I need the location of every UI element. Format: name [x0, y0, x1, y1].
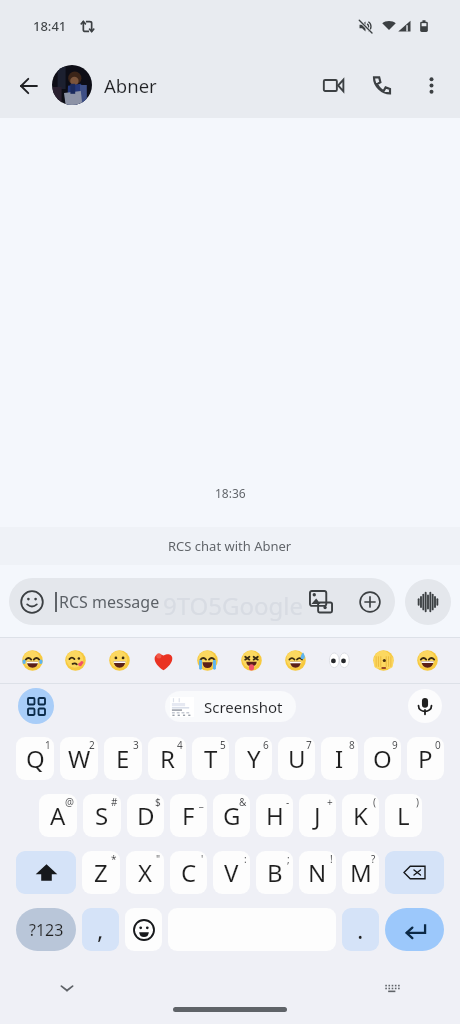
- button[interactable]: Y: [235, 737, 272, 780]
- button[interactable]: G: [213, 794, 250, 837]
- button[interactable]: backspace: [385, 851, 444, 894]
- staticText: ;: [287, 852, 290, 866]
- staticText: A: [50, 799, 66, 832]
- staticText: Q: [26, 742, 45, 775]
- staticText: *: [111, 852, 117, 866]
- button[interactable]: N: [299, 851, 336, 894]
- button[interactable]: Emoji: [141, 638, 185, 683]
- button[interactable]: Emoji: [185, 638, 229, 683]
- staticText: Y: [247, 742, 261, 775]
- button[interactable]: 9TO5Google: [9, 578, 395, 625]
- button[interactable]: Z: [82, 851, 120, 894]
- button[interactable]: A: [39, 794, 77, 837]
- button[interactable]: Apps: [18, 688, 54, 724]
- button[interactable]: Emoji: [229, 638, 273, 683]
- staticText: +: [327, 795, 333, 809]
- button[interactable]: M: [342, 851, 379, 894]
- button[interactable]: ,: [82, 908, 119, 951]
- button[interactable]: Emoji: [317, 638, 361, 683]
- staticText: 0: [435, 738, 441, 752]
- button[interactable]: Video call: [310, 62, 356, 108]
- button[interactable]: Emoji: [54, 638, 97, 683]
- staticText: ?: [371, 852, 376, 866]
- button[interactable]: U: [278, 737, 315, 780]
- button[interactable]: W: [60, 737, 98, 780]
- button[interactable]: emoji: [125, 908, 162, 951]
- button[interactable]: L: [385, 794, 422, 837]
- staticText: :: [244, 852, 247, 866]
- button[interactable]: V: [213, 851, 250, 894]
- button[interactable]: Emoji: [97, 638, 141, 683]
- button[interactable]: Voice message: [405, 579, 451, 625]
- button[interactable]: Back: [5, 62, 52, 109]
- staticText: 9: [392, 738, 398, 752]
- staticText: T: [204, 742, 218, 775]
- staticText: Z: [94, 856, 108, 889]
- button[interactable]: C: [170, 851, 207, 894]
- staticText: S: [95, 799, 109, 832]
- staticText: L: [397, 799, 410, 832]
- staticText: 6: [263, 738, 269, 752]
- button[interactable]: Voice input: [408, 689, 442, 723]
- button[interactable]: I: [321, 737, 358, 780]
- staticText: @: [65, 795, 74, 809]
- staticText: ,: [97, 913, 104, 946]
- staticText: 1: [45, 738, 51, 752]
- button[interactable]: ?123: [16, 908, 76, 951]
- staticText: C: [181, 856, 197, 889]
- staticText: .: [357, 913, 364, 946]
- staticText: 18:41: [33, 17, 67, 35]
- staticText: -: [286, 795, 290, 809]
- staticText: 18:36: [215, 485, 246, 501]
- staticText: $: [155, 795, 161, 809]
- button[interactable]: More options: [408, 62, 454, 108]
- button[interactable]: enter: [385, 908, 444, 951]
- button[interactable]: .: [342, 908, 379, 951]
- button[interactable]: Call: [359, 62, 405, 108]
- button[interactable]: K: [342, 794, 379, 837]
- button[interactable]: Hide keyboard: [45, 966, 89, 1010]
- staticText: 2: [89, 738, 95, 752]
- staticText: 3: [133, 738, 139, 752]
- button[interactable]: H: [256, 794, 293, 837]
- staticText: 9TO5Google: [163, 589, 304, 622]
- button[interactable]: Emoji: [11, 638, 54, 683]
- button[interactable]: J: [299, 794, 336, 837]
- button[interactable]: R: [148, 737, 186, 780]
- button[interactable]: P: [407, 737, 444, 780]
- staticText: I: [335, 742, 344, 775]
- button[interactable]: B: [256, 851, 293, 894]
- button[interactable]: Emoji: [361, 638, 405, 683]
- button[interactable]: F: [170, 794, 207, 837]
- staticText: G: [223, 799, 241, 832]
- staticText: B: [267, 856, 283, 889]
- button[interactable]: E: [104, 737, 142, 780]
- staticText: F: [182, 799, 195, 832]
- staticText: 7: [306, 738, 312, 752]
- staticText: 8: [349, 738, 355, 752]
- staticText: N: [308, 856, 327, 889]
- staticText: 5: [220, 738, 226, 752]
- button[interactable]: T: [192, 737, 229, 780]
- staticText: H: [266, 799, 284, 832]
- button[interactable]: D: [127, 794, 164, 837]
- button[interactable]: S: [83, 794, 121, 837]
- staticText: U: [288, 742, 306, 775]
- staticText: J: [314, 799, 321, 832]
- button[interactable]: Q: [16, 737, 54, 780]
- staticText: !: [330, 852, 333, 866]
- button[interactable]: Emoji: [273, 638, 317, 683]
- button[interactable]: shift: [16, 851, 76, 894]
- button[interactable]: Emoji: [405, 638, 449, 683]
- staticText: RCS chat with Abner: [168, 537, 292, 555]
- staticText: X: [138, 856, 153, 889]
- staticText: K: [353, 799, 368, 832]
- button[interactable]: Switch keyboard: [370, 966, 414, 1010]
- button[interactable]: O: [364, 737, 401, 780]
- button[interactable]: Contact photo: [52, 65, 92, 105]
- button[interactable]: X: [126, 851, 164, 894]
- staticText: M: [350, 856, 372, 889]
- staticText: _: [199, 795, 204, 809]
- button[interactable]: Screenshot: [165, 691, 296, 722]
